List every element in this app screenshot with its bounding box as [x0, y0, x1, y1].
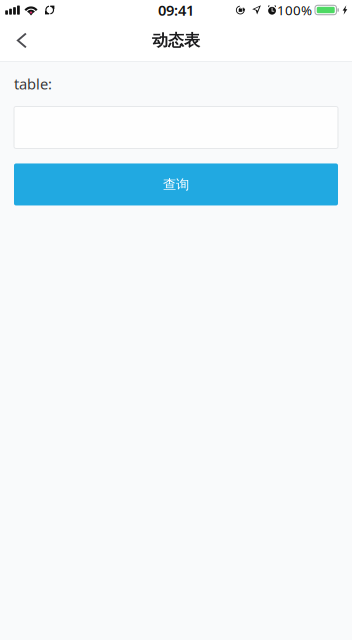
- staticText: 动态表: [152, 31, 200, 50]
- button[interactable]: Back: [0, 20, 38, 60]
- staticText: table:: [14, 74, 52, 93]
- staticText: 查询: [163, 176, 189, 193]
- button[interactable]: 查询: [14, 163, 338, 205]
- staticText: 100%: [277, 1, 312, 19]
- staticText: 09:41: [158, 0, 194, 20]
